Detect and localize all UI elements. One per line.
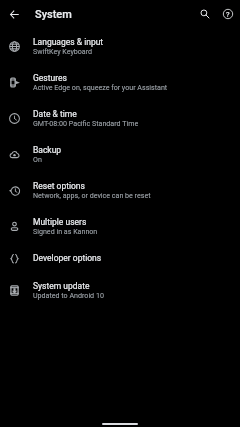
staticText: ?: [226, 10, 230, 19]
button[interactable]: Backup: [0, 136, 240, 172]
staticText: Active Edge on, squeeze for your Assista…: [33, 83, 168, 91]
staticText: Gestures: [33, 73, 67, 83]
button[interactable]: Navigate up: [5, 5, 23, 23]
staticText: Network, apps, or device can be reset: [33, 191, 151, 199]
staticText: Signed in as Kannon: [33, 227, 98, 235]
staticText: On: [33, 155, 42, 163]
button[interactable]: Languages & input: [0, 28, 240, 64]
staticText: Reset options: [33, 181, 85, 191]
staticText: Multiple users: [33, 217, 87, 227]
staticText: System update: [33, 281, 90, 291]
staticText: System: [35, 8, 72, 21]
button[interactable]: Date & time: [0, 100, 240, 136]
button[interactable]: Gestures: [0, 64, 240, 100]
button[interactable]: Reset options: [0, 172, 240, 208]
staticText: Date & time: [33, 109, 77, 119]
button[interactable]: System update: [0, 272, 240, 308]
button[interactable]: Search: [196, 5, 214, 23]
staticText: Developer options: [33, 253, 102, 263]
button[interactable]: Developer options: [0, 244, 240, 272]
staticText: GMT-08:00 Pacific Standard Time: [33, 119, 139, 127]
button[interactable]: Multiple users: [0, 208, 240, 244]
staticText: Languages & input: [33, 37, 104, 47]
staticText: Updated to Android 10: [33, 291, 104, 299]
staticText: Backup: [33, 145, 62, 155]
button[interactable]: Help: [219, 5, 237, 23]
staticText: SwiftKey Keyboard: [33, 47, 93, 55]
